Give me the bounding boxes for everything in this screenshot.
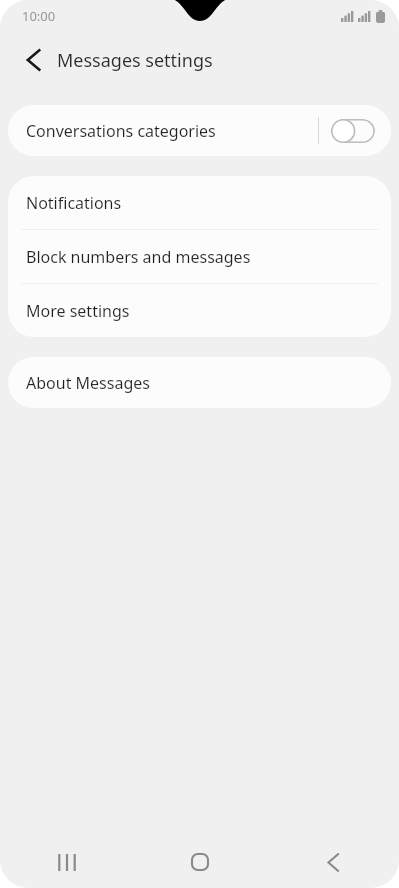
button[interactable]: Home — [133, 836, 266, 888]
staticText: 10:00 — [22, 7, 56, 25]
button[interactable]: Notifications — [8, 176, 391, 229]
staticText: About Messages — [26, 372, 150, 394]
staticText: Block numbers and messages — [26, 246, 251, 268]
button[interactable]: Recent apps — [0, 836, 133, 888]
button[interactable]: Back — [266, 836, 399, 888]
button[interactable]: Block numbers and messages — [8, 230, 391, 283]
button[interactable]: Back — [12, 39, 54, 81]
button[interactable]: About Messages — [8, 357, 391, 408]
button[interactable]: More settings — [8, 284, 391, 337]
button[interactable]: Conversations categories toggle — [331, 119, 375, 143]
staticText: More settings — [26, 300, 130, 322]
staticText: Conversations categories — [26, 120, 216, 142]
staticText: Notifications — [26, 192, 122, 214]
button[interactable]: Conversations categories — [8, 105, 391, 156]
staticText: Messages settings — [57, 48, 213, 73]
